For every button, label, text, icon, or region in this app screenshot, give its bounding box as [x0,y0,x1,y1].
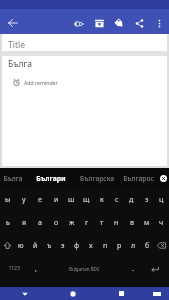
button[interactable]: е [32,188,48,211]
button[interactable]: Home [49,287,97,300]
staticText: Българи [36,174,66,183]
button[interactable]: ш [64,188,79,211]
button[interactable]: щ [79,188,94,211]
button[interactable]: Българска [75,168,118,188]
button[interactable]: Bulgarian BDS [44,261,125,276]
staticText: у [22,195,26,205]
button[interactable]: More options [149,9,169,34]
staticText: д [129,195,134,205]
button[interactable]: ц [154,188,169,211]
staticText: с [115,195,119,205]
button[interactable]: , [28,257,44,280]
button[interactable]: л [126,234,140,257]
button[interactable]: с [109,188,124,211]
staticText: п [103,241,108,251]
staticText: к [100,195,104,205]
staticText: о [54,218,59,228]
staticText: х [89,241,93,251]
button[interactable]: б [140,234,154,257]
button[interactable]: ф [70,234,84,257]
button[interactable]: Label [109,9,129,34]
button[interactable]: Българос [118,168,158,188]
staticText: . [132,264,134,274]
button[interactable]: Add reminder [2,78,167,94]
staticText: Bulgarian BDS [69,266,100,272]
staticText: ж [69,218,75,228]
button[interactable]: м [139,211,154,234]
button[interactable]: Pin note [69,9,89,34]
staticText: и [54,195,59,205]
staticText: Българос [123,174,154,183]
button[interactable]: а [32,211,48,234]
button[interactable]: ы [0,188,16,211]
staticText: ь [6,218,10,228]
button[interactable]: Бълга [2,56,167,78]
button[interactable]: Close suggestions [158,168,169,188]
button[interactable]: э [56,234,70,257]
staticText: ю [18,241,24,251]
button[interactable]: з [139,188,154,211]
button[interactable]: у [16,188,32,211]
staticText: ф [74,241,80,251]
staticText: л [131,241,136,251]
button[interactable]: п [98,234,112,257]
button[interactable]: Title [2,34,167,51]
staticText: ц [159,195,164,205]
staticText: э [61,241,65,251]
staticText: е [38,195,42,205]
button[interactable]: Change keyboard [145,287,169,300]
button[interactable]: х [84,234,98,257]
button[interactable]: ?123 [0,257,28,280]
button[interactable]: ь [0,211,16,234]
button[interactable]: ч [154,211,169,234]
staticText: т [100,218,104,228]
staticText: з [145,195,149,205]
button[interactable]: Share [129,9,149,34]
button[interactable]: ю [14,234,28,257]
button[interactable]: Navigate up [0,9,25,34]
staticText: ч [159,218,164,228]
staticText: ы [5,195,11,205]
staticText: Add reminder [24,79,58,86]
staticText: ъ [47,241,52,251]
staticText: й [33,241,38,251]
staticText: в [130,218,134,228]
button[interactable]: о [48,211,64,234]
button[interactable]: Archive [89,9,109,34]
button[interactable]: г [79,211,94,234]
button[interactable]: н [109,211,124,234]
staticText: Българска [80,174,114,183]
staticText: г [85,218,89,228]
staticText: Title [8,39,25,51]
button[interactable]: в [124,211,139,234]
button[interactable]: т [94,211,109,234]
button[interactable]: Delete [154,234,169,257]
button[interactable]: р [112,234,126,257]
button[interactable]: Българи [26,168,75,188]
staticText: а [38,218,42,228]
button[interactable]: ж [64,211,79,234]
staticText: Бълга [3,174,23,183]
button[interactable]: Shift [0,234,14,257]
staticText: ?123 [9,265,20,272]
staticText: р [117,241,122,251]
button[interactable]: . [125,257,141,280]
button[interactable]: Бълга [0,168,26,188]
staticText: б [145,241,150,251]
staticText: я [22,218,27,228]
staticText: ш [68,195,75,205]
staticText: н [114,218,119,228]
button[interactable]: к [94,188,109,211]
button[interactable]: й [28,234,42,257]
button[interactable]: Enter [141,257,169,280]
button[interactable]: я [16,211,32,234]
staticText: щ [83,195,90,205]
button[interactable]: Recent apps [97,287,145,300]
button[interactable]: ъ [42,234,56,257]
staticText: Бълга [8,58,32,70]
button[interactable]: и [48,188,64,211]
staticText: , [35,264,37,274]
button[interactable]: д [124,188,139,211]
staticText: м [144,218,150,228]
button[interactable]: Back [0,287,49,300]
